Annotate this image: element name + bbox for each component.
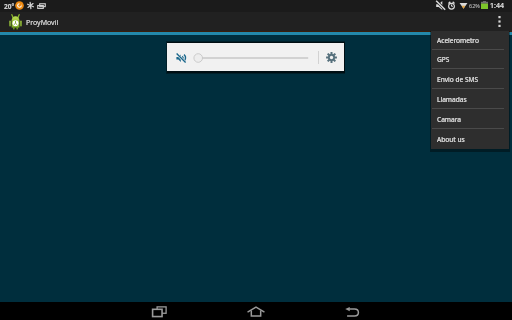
staticText: Camara [437,115,462,124]
button[interactable]: Mute [172,49,190,67]
button[interactable]: Envio de SMS [431,69,509,89]
button[interactable]: Recents [135,302,183,320]
staticText: ProyMovil [26,18,59,28]
button[interactable]: More options [490,12,508,31]
button[interactable]: Sound settings [322,48,341,67]
staticText: 62% [469,2,480,9]
button[interactable]: Back [328,302,376,320]
button[interactable]: Llamadas [431,89,509,109]
button[interactable]: GPS [431,50,509,69]
staticText: 20° [4,2,15,11]
button[interactable]: About us [431,129,509,149]
staticText: Llamadas [437,95,467,104]
button[interactable]: Acelerometro [431,31,509,50]
staticText: Acelerometro [437,36,479,45]
staticText: GPS [437,55,450,64]
staticText: About us [437,135,465,144]
staticText: Envio de SMS [437,75,479,84]
button[interactable]: Camara [431,109,509,129]
staticText: 1:44 [490,1,504,11]
button[interactable]: Home [232,302,280,320]
